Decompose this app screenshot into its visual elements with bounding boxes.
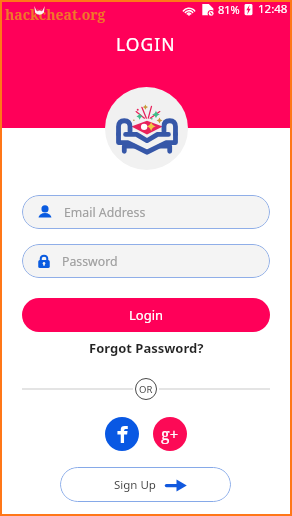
button[interactable]: Password bbox=[22, 244, 270, 278]
staticText: 12:48 bbox=[258, 1, 288, 17]
button[interactable]: Sign Up bbox=[60, 467, 231, 502]
staticText: Forgot Password? bbox=[89, 339, 204, 357]
staticText: g+ bbox=[161, 423, 179, 445]
staticText: Password bbox=[62, 253, 118, 270]
staticText: Sign Up bbox=[114, 477, 156, 493]
button[interactable]: Sign in with Google Plus bbox=[153, 417, 187, 451]
staticText: LOGIN bbox=[116, 32, 176, 56]
staticText: hackcheat.org bbox=[5, 5, 106, 24]
button[interactable]: Forgot Password? bbox=[83, 336, 210, 360]
button[interactable]: Login bbox=[22, 298, 270, 332]
button[interactable]: Sign in with Facebook bbox=[105, 417, 139, 451]
staticText: OR bbox=[139, 383, 153, 396]
staticText: Login bbox=[129, 306, 164, 324]
button[interactable]: Email Address bbox=[22, 195, 270, 229]
staticText: Email Address bbox=[64, 204, 146, 221]
staticText: 81% bbox=[218, 2, 240, 17]
